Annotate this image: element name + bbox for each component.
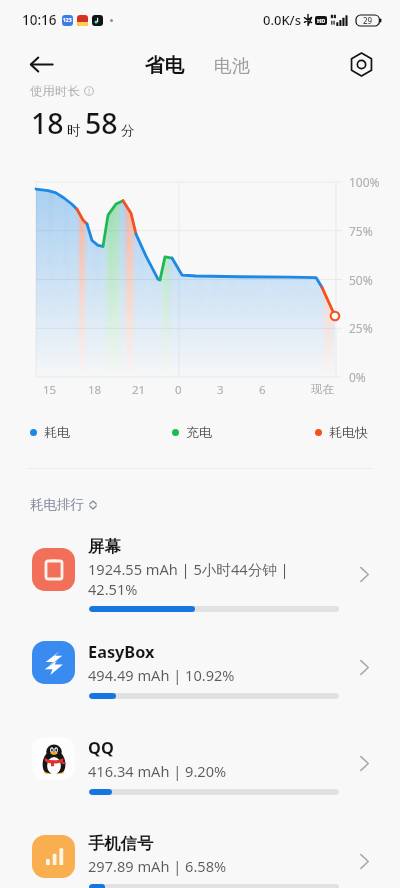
staticText: 29 [363,15,373,26]
staticText: 10:16 [22,11,57,29]
staticText: 50% [349,272,373,288]
staticText: 0.0K/s [263,11,301,29]
staticText: 21 [132,382,146,398]
button[interactable]: 屏幕 [0,530,400,618]
button[interactable]: 耗电排行 [24,494,104,515]
staticText: EasyBox [88,641,155,663]
staticText: 耗电 [44,424,70,440]
button[interactable]: EasyBox [0,635,400,705]
button[interactable]: 设置 [339,42,384,87]
staticText: 18 [31,104,64,143]
staticText: 6 [259,382,266,398]
staticText: 电池 [214,55,250,78]
button[interactable]: 省电 [139,50,190,81]
staticText: 494.49 mAh | 10.92% [88,665,235,685]
staticText: 耗电排行 [30,496,84,513]
staticText: 时 [67,122,81,139]
staticText: 耗电快 [329,424,368,440]
staticText: 使用时长 [30,83,80,99]
staticText: 屏幕 [88,536,121,557]
staticText: 手机信号 [88,833,154,854]
staticText: 0 [175,382,182,398]
staticText: 充电 [186,424,212,440]
staticText: 1924.55 mAh | 5小时44分钟 | 42.51% [88,559,289,600]
staticText: 3 [217,382,224,398]
staticText: 297.89 mAh | 6.58% [88,856,227,876]
staticText: 15 [43,382,57,398]
staticText: 现在 [311,382,334,396]
staticText: 100% [349,174,380,190]
button[interactable]: 返回 [19,42,64,87]
staticText: 18 [88,382,102,398]
staticText: 0% [349,369,366,385]
staticText: 省电 [145,53,184,78]
staticText: 25% [349,320,373,336]
staticText: 416.34 mAh | 9.20% [88,761,227,781]
staticText: 58 [85,104,118,143]
button[interactable]: 电池 [208,52,256,81]
staticText: HD [317,17,326,24]
button[interactable]: QQ [0,731,400,801]
staticText: 分 [121,122,135,139]
button[interactable]: 手机信号 [0,827,400,888]
staticText: 75% [349,223,373,239]
staticText: 123 [63,17,72,24]
staticText: QQ [88,737,114,759]
